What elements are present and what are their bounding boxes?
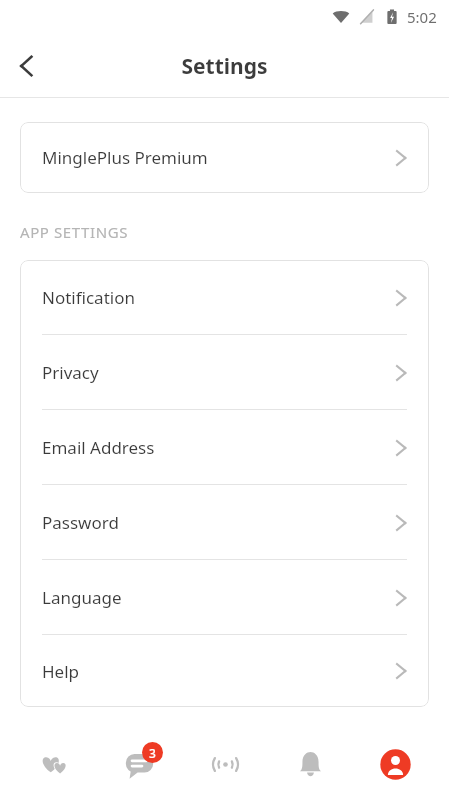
staticText: 5:02 — [407, 7, 437, 27]
button[interactable]: Back — [6, 45, 48, 87]
staticText: APP SETTINGS — [20, 222, 129, 242]
staticText: Settings — [181, 52, 268, 81]
staticText: Email Address — [42, 436, 155, 459]
staticText: MinglePlus Premium — [42, 146, 208, 169]
button[interactable]: Notifications — [279, 733, 341, 795]
button[interactable]: Password — [20, 485, 429, 560]
button[interactable]: Email Address — [20, 410, 429, 485]
staticText: Notification — [42, 286, 135, 309]
staticText: Language — [42, 586, 122, 609]
staticText: 3 — [149, 745, 156, 761]
staticText: Password — [42, 511, 119, 534]
button[interactable]: MinglePlus Premium — [20, 122, 429, 193]
staticText: Privacy — [42, 361, 99, 384]
button[interactable]: Privacy — [20, 335, 429, 410]
button[interactable]: Notification — [20, 260, 429, 335]
staticText: Help — [42, 660, 80, 683]
button[interactable]: Language — [20, 560, 429, 635]
button[interactable]: Discover — [194, 733, 256, 795]
button[interactable]: Matches — [23, 733, 85, 795]
button[interactable]: Messages — [108, 733, 170, 795]
button[interactable]: Profile — [364, 733, 426, 795]
button[interactable]: Help — [20, 635, 429, 707]
